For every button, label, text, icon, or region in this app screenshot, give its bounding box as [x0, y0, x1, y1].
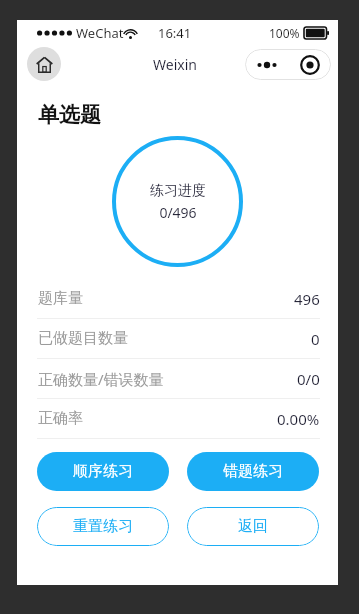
staticText: 题库量	[38, 289, 83, 308]
staticText: Weixin	[153, 55, 197, 74]
button[interactable]: 已做题目数量	[17, 319, 338, 359]
button[interactable]: 错题练习	[187, 452, 319, 491]
staticText: 返回	[238, 517, 268, 536]
button[interactable]: Close	[288, 49, 331, 80]
button[interactable]: 重置练习	[37, 507, 169, 546]
button[interactable]: 顺序练习	[37, 452, 169, 491]
staticText: 16:41	[158, 24, 192, 42]
staticText: 练习进度	[150, 182, 206, 200]
staticText: 已做题目数量	[38, 329, 128, 348]
staticText: 496	[294, 289, 320, 309]
staticText: 0/496	[159, 203, 197, 222]
button[interactable]: 正确数量/错误数量	[17, 359, 338, 399]
staticText: 0.00%	[277, 409, 320, 429]
button[interactable]: Home	[27, 47, 61, 81]
staticText: 单选题	[38, 102, 101, 128]
staticText: 0/0	[297, 369, 320, 389]
staticText: 100%	[269, 25, 300, 41]
staticText: 错题练习	[223, 462, 283, 481]
staticText: 顺序练习	[73, 462, 133, 481]
staticText: WeChat	[76, 24, 124, 42]
staticText: 重置练习	[73, 517, 133, 536]
button[interactable]: 题库量	[17, 279, 338, 319]
staticText: 0	[311, 329, 320, 349]
staticText: 正确率	[38, 409, 83, 428]
staticText: 正确数量/错误数量	[38, 369, 164, 389]
button[interactable]: More options	[245, 49, 288, 80]
button[interactable]: 正确率	[17, 399, 338, 439]
button[interactable]: 返回	[187, 507, 319, 546]
